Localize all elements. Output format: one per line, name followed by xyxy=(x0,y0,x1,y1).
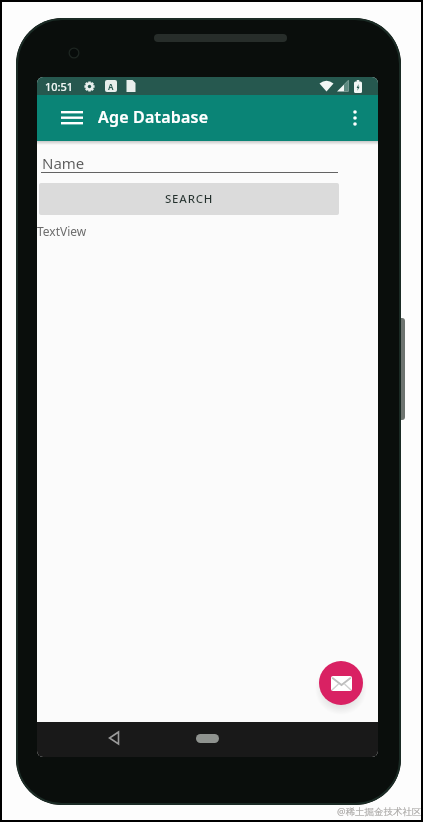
staticText: Age Database xyxy=(98,106,209,128)
button[interactable]: SEARCH xyxy=(39,183,339,215)
staticText: SEARCH xyxy=(165,191,214,207)
staticText: Name xyxy=(42,153,85,173)
staticText: TextView xyxy=(37,223,87,239)
button[interactable] xyxy=(340,103,370,133)
button[interactable] xyxy=(54,100,90,136)
button[interactable] xyxy=(196,734,219,743)
button[interactable] xyxy=(319,661,363,705)
staticText: @稀土掘金技术社区 xyxy=(337,805,422,818)
staticText: A xyxy=(108,81,114,92)
staticText: 10:51 xyxy=(45,79,74,94)
